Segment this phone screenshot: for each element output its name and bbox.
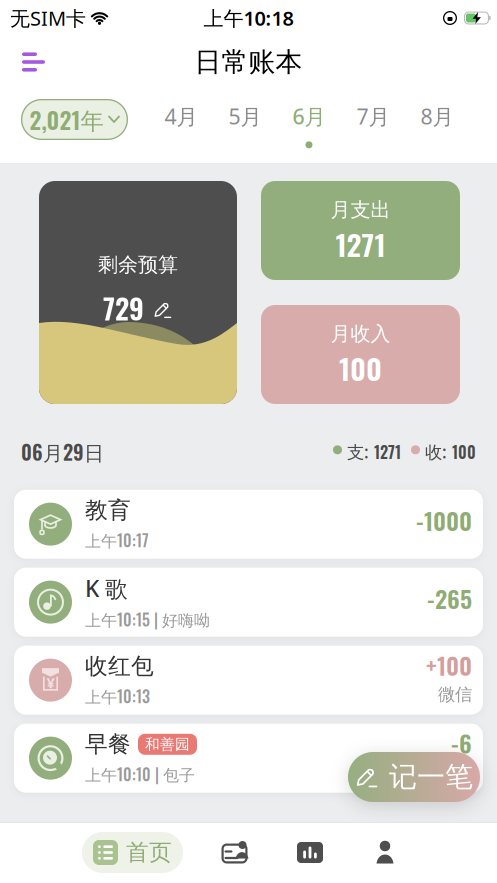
staticText: 4月 <box>164 102 197 130</box>
staticText: 日常账本 <box>194 46 302 78</box>
staticText: 上午10:10 | 包子 <box>85 762 195 786</box>
button[interactable]: 账单 <box>221 840 248 864</box>
staticText: 早餐 <box>85 730 131 758</box>
staticText: ¥ <box>46 673 54 692</box>
staticText: 100 <box>452 440 476 464</box>
staticText: 微信 <box>438 684 472 705</box>
staticText: 收: <box>420 440 452 463</box>
button[interactable]: 2,021年 <box>21 99 128 140</box>
staticText: 首页 <box>126 839 172 866</box>
staticText: -6 <box>451 725 472 760</box>
button[interactable]: ¥ <box>14 646 483 715</box>
staticText: K 歌 <box>85 573 128 603</box>
button[interactable]: 教育 <box>14 490 483 559</box>
button[interactable]: 6月 <box>277 90 341 148</box>
button[interactable]: 月支出 <box>261 181 460 280</box>
staticText: 月支出 <box>330 197 390 222</box>
staticText: 记一笔 <box>389 760 473 794</box>
staticText: 1271 <box>335 222 385 265</box>
staticText: 上午10:17 <box>85 528 149 552</box>
button[interactable]: 菜单 <box>0 52 45 72</box>
staticText: 无SIM卡 <box>10 5 86 31</box>
button[interactable]: 记一笔 <box>348 752 480 802</box>
button[interactable]: 4月 <box>149 90 213 148</box>
staticText: 2,021年 <box>29 102 103 137</box>
staticText: -265 <box>427 580 472 616</box>
staticText: 7月 <box>356 102 389 130</box>
button[interactable]: 首页 <box>82 832 183 873</box>
button[interactable]: K 歌 <box>14 568 483 637</box>
staticText: 和善园 <box>145 735 190 753</box>
staticText: 月收入 <box>330 321 390 346</box>
button[interactable]: 5月 <box>213 90 277 148</box>
staticText: 收红包 <box>85 652 154 680</box>
staticText: 5月 <box>228 102 261 130</box>
button[interactable]: 统计 <box>297 842 323 863</box>
staticText: 06月29日 <box>21 437 104 467</box>
button[interactable]: 8月 <box>405 90 469 148</box>
staticText: 6月 <box>292 102 325 130</box>
button[interactable]: 7月 <box>341 90 405 148</box>
button[interactable]: 月收入 <box>261 305 460 404</box>
staticText: 729 <box>103 287 144 328</box>
staticText: 100 <box>339 346 382 389</box>
staticText: 8月 <box>420 102 453 130</box>
staticText: 教育 <box>85 496 131 524</box>
staticText: 上午10:15 | 好嗨呦 <box>85 607 210 631</box>
button[interactable]: 早餐 <box>14 724 483 793</box>
staticText: 支: <box>342 440 374 463</box>
staticText: +100 <box>426 647 472 683</box>
staticText: 上午10:13 <box>85 684 150 708</box>
staticText: -1000 <box>416 502 472 538</box>
staticText: 剩余预算 <box>98 252 178 277</box>
button[interactable]: 我的 <box>373 840 397 864</box>
staticText: 1271 <box>374 440 401 464</box>
staticText: 上午10:18 <box>203 5 293 31</box>
button[interactable]: 剩余预算 <box>39 181 237 404</box>
